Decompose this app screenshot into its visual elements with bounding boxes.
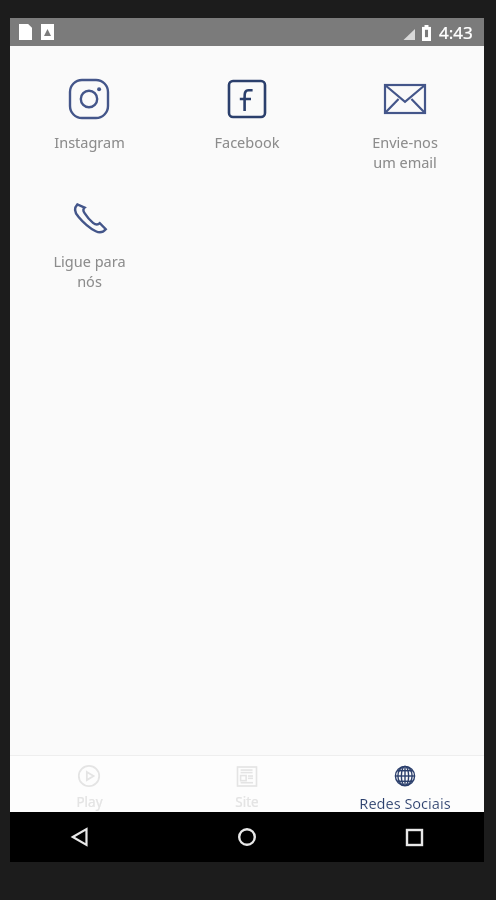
staticText: Envie-nos um email [372, 132, 438, 173]
button[interactable]: Site [168, 756, 326, 812]
button[interactable]: Play [10, 756, 168, 812]
button[interactable]: Facebook [168, 70, 326, 158]
staticText: Redes Sociais [359, 793, 451, 812]
button[interactable]: Back [58, 815, 102, 859]
staticText: Site [235, 793, 259, 811]
button[interactable]: Redes Sociais [326, 756, 484, 812]
button[interactable]: Home [225, 815, 269, 859]
staticText: 4:43 [439, 21, 473, 44]
button[interactable]: Envie-nos um email [326, 70, 484, 179]
button[interactable]: Ligue para nós [10, 189, 168, 298]
staticText: Play [76, 793, 103, 811]
button[interactable]: Instagram [10, 70, 168, 158]
staticText: Ligue para nós [53, 251, 126, 292]
button[interactable]: Recent apps [392, 815, 436, 859]
staticText: Instagram [54, 132, 125, 152]
staticText: Facebook [214, 132, 280, 152]
